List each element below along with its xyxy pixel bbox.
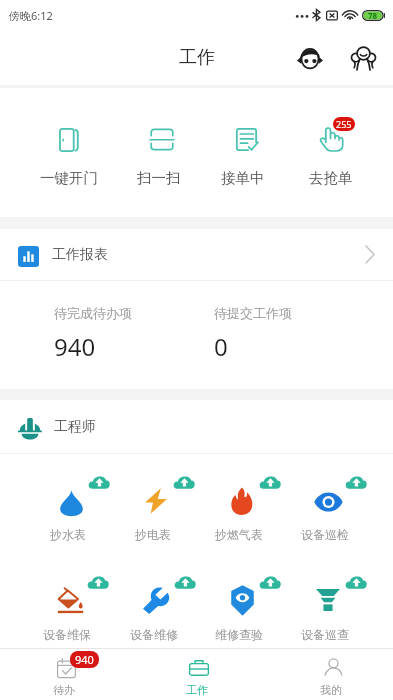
staticText: 我的	[320, 683, 342, 697]
button[interactable]: 设备巡检	[282, 475, 368, 542]
staticText: 一键开门	[40, 169, 98, 187]
staticText: 设备维修	[130, 627, 178, 642]
button[interactable]: 工作	[157, 657, 237, 697]
staticText: 傍晚6:12	[9, 8, 53, 23]
staticText: 抄燃气表	[215, 527, 263, 542]
staticText: 待办	[53, 683, 75, 697]
staticText: 设备巡检	[301, 527, 349, 542]
staticText: 待完成待办项	[54, 305, 132, 321]
button[interactable]: 扫一扫	[120, 124, 198, 187]
button[interactable]: 工作报表	[0, 229, 393, 280]
button[interactable]: 一键开门	[30, 124, 108, 187]
button[interactable]: 接单中	[204, 124, 282, 187]
button[interactable]: 抄燃气表	[196, 475, 282, 542]
staticText: 工程师	[54, 418, 96, 436]
staticText: 工作	[186, 683, 208, 697]
button[interactable]: 设备维修	[111, 575, 197, 642]
staticText: 扫一扫	[137, 169, 181, 187]
staticText: 待提交工作项	[214, 305, 292, 321]
staticText: 维修查验	[215, 627, 263, 642]
staticText: 设备维保	[43, 627, 91, 642]
staticText: 78	[368, 10, 378, 21]
staticText: 940	[54, 330, 96, 363]
staticText: 工作	[179, 46, 215, 69]
staticText: 去抢单	[309, 169, 353, 187]
staticText: 抄电表	[135, 527, 171, 542]
button[interactable]: 抄水表	[25, 475, 111, 542]
button[interactable]: 抄电表	[110, 475, 196, 542]
button[interactable]: 我的	[291, 657, 371, 697]
button[interactable]: 设备巡查	[282, 575, 368, 642]
staticText: 抄水表	[50, 527, 86, 542]
staticText: 255	[336, 118, 352, 130]
staticText: 工作报表	[52, 246, 108, 264]
staticText: 设备巡查	[301, 627, 349, 642]
staticText: 接单中	[221, 169, 265, 187]
staticText: 0	[214, 330, 228, 363]
button[interactable]: 设备维保	[24, 575, 110, 642]
button[interactable]: 940	[24, 657, 104, 697]
staticText: 940	[75, 652, 94, 667]
button[interactable]: 255	[292, 124, 370, 187]
button[interactable]: 维修查验	[196, 575, 282, 642]
button[interactable]: Profile	[292, 40, 328, 76]
button[interactable]: Team	[345, 40, 381, 76]
